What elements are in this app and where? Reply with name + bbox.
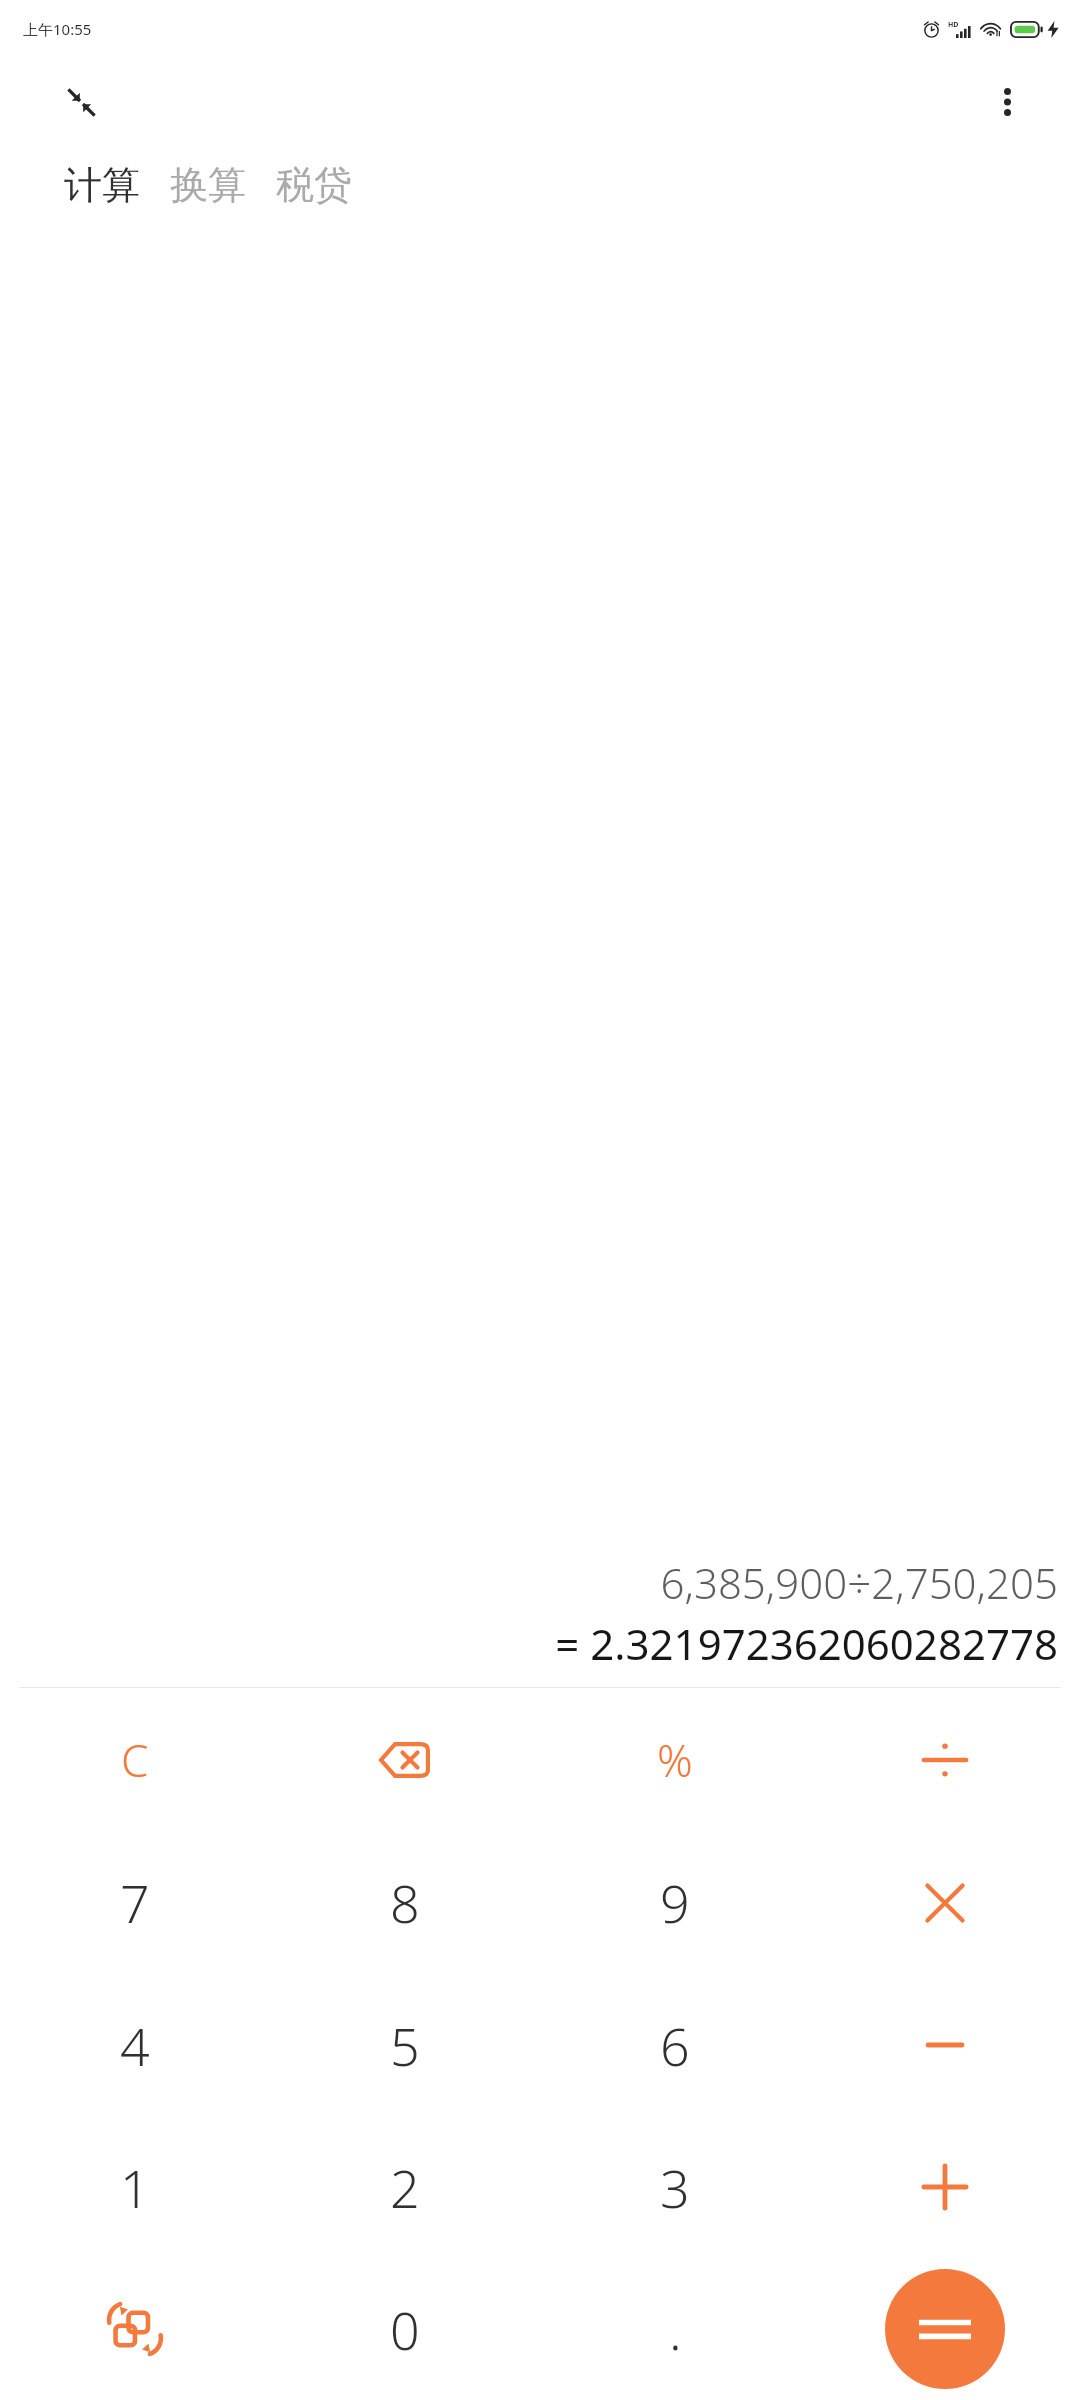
button[interactable]: 8 xyxy=(270,1831,540,1974)
staticText: 税贷 xyxy=(276,161,352,209)
button[interactable]: Equals xyxy=(885,2269,1005,2389)
staticText: 0 xyxy=(390,2294,420,2365)
staticText: % xyxy=(657,1730,693,1790)
button[interactable]: Multiply xyxy=(810,1831,1080,1974)
staticText: 3 xyxy=(660,2152,690,2223)
staticText: 6 xyxy=(660,2010,690,2081)
button[interactable]: Backspace xyxy=(270,1688,540,1831)
button[interactable]: 3 xyxy=(540,2116,810,2258)
other: Multiply xyxy=(923,1881,967,1925)
staticText: . xyxy=(669,2294,682,2365)
button[interactable]: 7 xyxy=(0,1831,270,1974)
button[interactable]: Shrink window xyxy=(58,79,104,125)
button[interactable]: More options xyxy=(984,79,1030,125)
other: Divide xyxy=(922,1739,968,1781)
staticText: HD xyxy=(948,20,959,30)
button[interactable]: 1 xyxy=(0,2116,270,2258)
button[interactable]: 计算 xyxy=(62,157,142,213)
button[interactable]: Plus xyxy=(810,2116,1080,2258)
button[interactable]: 税贷 xyxy=(274,157,354,213)
button[interactable]: 换算 xyxy=(168,157,248,213)
staticText: 上午10:55 xyxy=(23,19,92,39)
button[interactable]: C xyxy=(0,1688,270,1831)
button[interactable]: . xyxy=(540,2258,810,2400)
staticText: 8 xyxy=(390,1867,420,1938)
button[interactable]: 0 xyxy=(270,2258,540,2400)
staticText: 6,385,900÷2,750,205 xyxy=(660,1554,1058,1611)
staticText: 7 xyxy=(120,1867,150,1938)
other: Plus xyxy=(922,2164,968,2210)
staticText: 计算 xyxy=(64,161,140,209)
staticText: C xyxy=(121,1730,149,1790)
other: Minus xyxy=(922,2039,968,2051)
other: Backspace xyxy=(380,1742,430,1778)
staticText: 5 xyxy=(390,2010,420,2081)
staticText: 2 xyxy=(390,2152,420,2223)
button[interactable]: 4 xyxy=(0,1974,270,2116)
button[interactable]: % xyxy=(540,1688,810,1831)
staticText: = 2.321972362060282778 xyxy=(555,1615,1058,1672)
staticText: 换算 xyxy=(170,161,246,209)
button[interactable]: 2 xyxy=(270,2116,540,2258)
other: Convert xyxy=(108,2302,162,2356)
staticText: 9 xyxy=(660,1867,690,1938)
button[interactable]: 9 xyxy=(540,1831,810,1974)
button[interactable]: Convert xyxy=(0,2258,270,2400)
staticText: 4 xyxy=(120,2010,150,2081)
button[interactable]: 5 xyxy=(270,1974,540,2116)
button[interactable]: 6 xyxy=(540,1974,810,2116)
staticText: 1 xyxy=(120,2152,150,2223)
button[interactable]: Minus xyxy=(810,1974,1080,2116)
button[interactable]: Divide xyxy=(810,1688,1080,1831)
